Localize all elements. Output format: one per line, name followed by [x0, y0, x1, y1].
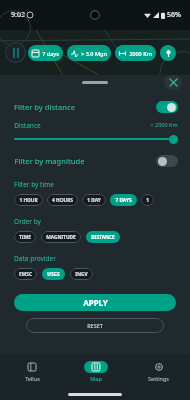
staticText: Distance	[14, 121, 41, 130]
button[interactable]: Filter	[160, 45, 176, 61]
button[interactable]: 2000 Km	[115, 45, 156, 61]
staticText: Settings	[148, 375, 169, 382]
button[interactable]: 7 DAYS	[110, 194, 137, 206]
staticText: Filter by time	[14, 180, 54, 189]
staticText: Tellus	[25, 375, 40, 382]
staticText: 4 HOURS	[52, 197, 73, 204]
staticText: 56%	[167, 10, 181, 20]
staticText: RESET	[87, 322, 103, 329]
button[interactable]: Tellus	[0, 354, 64, 388]
button[interactable]: MAGNITUDE	[41, 231, 81, 243]
staticText: > 3.0 Mgn	[81, 50, 107, 57]
button[interactable]: INGV	[70, 268, 93, 280]
button[interactable]: 1 DAY	[82, 194, 106, 206]
button[interactable]: Filter by magnitude	[8, 153, 182, 169]
button[interactable]: Map	[64, 354, 127, 388]
button[interactable]: USGS	[42, 268, 65, 280]
staticText: MAGNITUDE	[46, 234, 76, 241]
button[interactable]: 7 days	[28, 45, 63, 61]
staticText: < 2000 Km	[150, 121, 178, 128]
staticText: Filter by magnitude	[14, 156, 85, 166]
button[interactable]: Distance slider	[169, 135, 178, 144]
staticText: 7 DAYS	[115, 197, 132, 204]
button[interactable]: Close	[164, 75, 182, 90]
staticText: Data provider	[14, 254, 56, 263]
staticText: DISTANCE	[91, 234, 115, 241]
staticText: TIME	[19, 234, 31, 241]
staticText: INGV	[75, 271, 88, 278]
staticText: Map	[90, 375, 102, 382]
staticText: 1	[146, 197, 149, 204]
staticText: APPLY	[83, 297, 108, 308]
button[interactable]: DISTANCE	[86, 231, 120, 243]
staticText: Filter by distance	[14, 102, 75, 112]
button[interactable]: Settings	[127, 354, 190, 388]
staticText: 7 days	[42, 50, 59, 57]
staticText: 1 DAY	[87, 197, 101, 204]
staticText: 2000 Km	[129, 50, 152, 57]
button[interactable]: > 3.0 Mgn	[67, 45, 111, 61]
staticText: EMSC	[19, 271, 32, 278]
staticText: Order by	[14, 217, 41, 226]
button[interactable]: 1 HOUR	[14, 194, 43, 206]
button[interactable]: RESET	[26, 318, 164, 333]
button[interactable]: Filter by distance	[8, 99, 182, 115]
button[interactable]: EMSC	[14, 268, 37, 280]
staticText: 1 HOUR	[19, 197, 38, 204]
button[interactable]: Layers	[5, 42, 26, 63]
staticText: 9:03	[11, 10, 25, 20]
button[interactable]: TIME	[14, 231, 36, 243]
button[interactable]: APPLY	[14, 294, 176, 311]
button[interactable]: 1	[141, 194, 154, 206]
button[interactable]: 4 HOURS	[47, 194, 78, 206]
staticText: USGS	[47, 271, 60, 278]
